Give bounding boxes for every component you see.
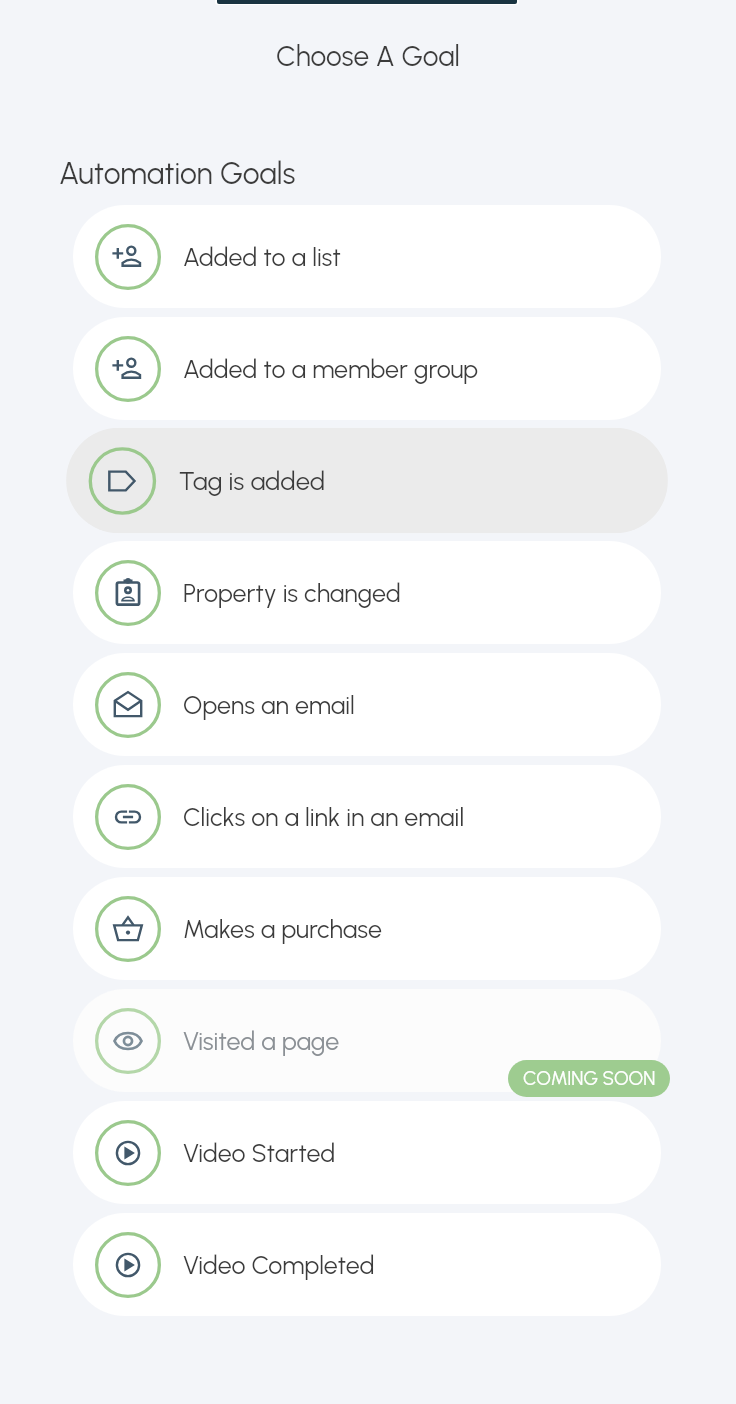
staticText: Tag is added: [179, 466, 326, 496]
staticText: COMING SOON: [523, 1067, 656, 1090]
staticText: Video Started: [183, 1138, 336, 1168]
button[interactable]: Added to a list: [73, 205, 661, 308]
staticText: Automation Goals: [59, 155, 296, 191]
staticText: Visited a page: [183, 1026, 340, 1056]
staticText: Makes a purchase: [183, 914, 382, 944]
staticText: Choose A Goal: [0, 39, 736, 73]
button[interactable]: Video Started: [73, 1101, 661, 1204]
staticText: Clicks on a link in an email: [183, 802, 465, 832]
button[interactable]: Tag is added: [66, 428, 668, 533]
staticText: Opens an email: [183, 690, 355, 720]
staticText: Property is changed: [183, 578, 401, 608]
button[interactable]: Makes a purchase: [73, 877, 661, 980]
button[interactable]: Property is changed: [73, 541, 661, 644]
staticText: Added to a list: [183, 242, 341, 272]
button[interactable]: Visited a page: [73, 989, 661, 1092]
button[interactable]: Clicks on a link in an email: [73, 765, 661, 868]
staticText: Added to a member group: [183, 354, 479, 384]
button[interactable]: Opens an email: [73, 653, 661, 756]
staticText: Video Completed: [183, 1250, 375, 1280]
button[interactable]: Video Completed: [73, 1213, 661, 1316]
button[interactable]: Added to a member group: [73, 317, 661, 420]
